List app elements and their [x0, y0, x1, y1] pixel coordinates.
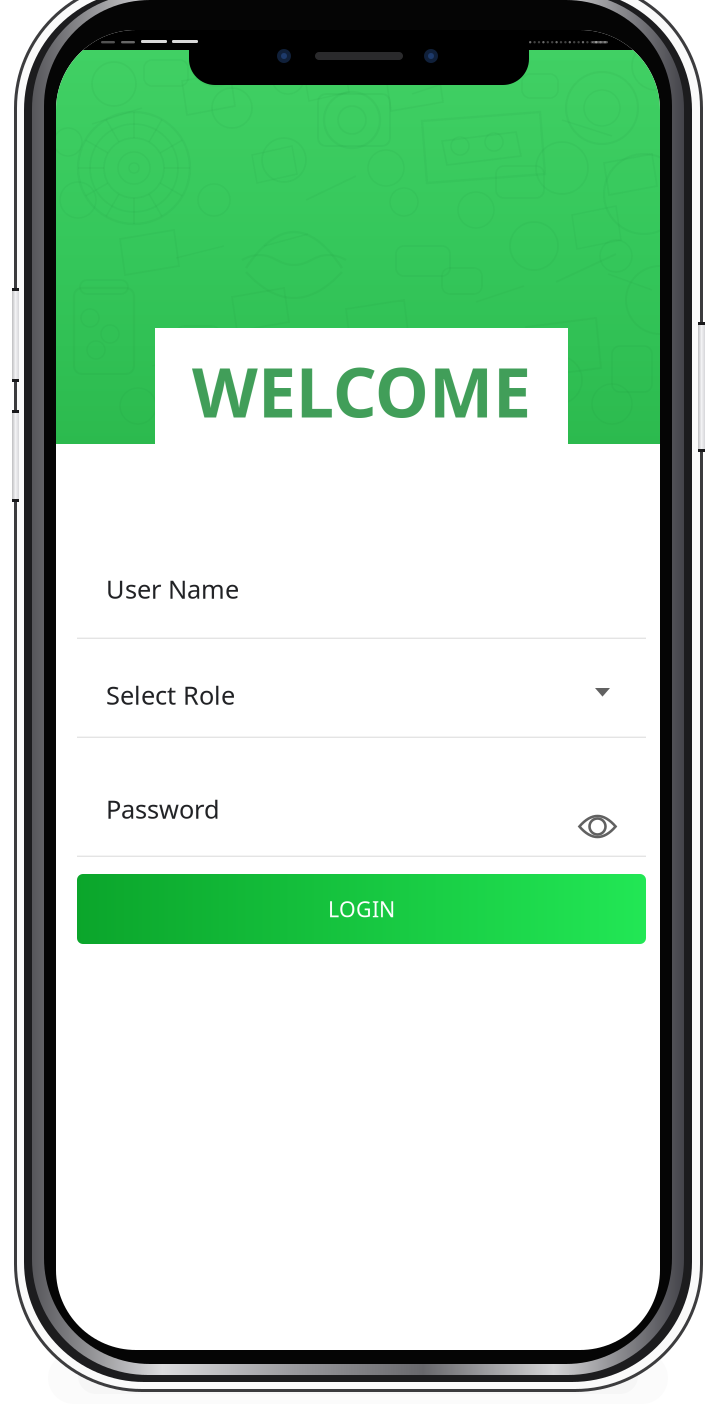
staticText: Password	[106, 792, 220, 826]
button[interactable]: User Name	[77, 543, 646, 639]
staticText: WELCOME	[192, 346, 531, 436]
button[interactable]: LOGIN	[77, 874, 646, 944]
button[interactable]: Password	[77, 738, 646, 857]
button[interactable]: Select Role	[77, 639, 646, 738]
staticText: User Name	[106, 572, 239, 606]
staticText: Select Role	[106, 678, 235, 712]
staticText: LOGIN	[328, 895, 395, 923]
